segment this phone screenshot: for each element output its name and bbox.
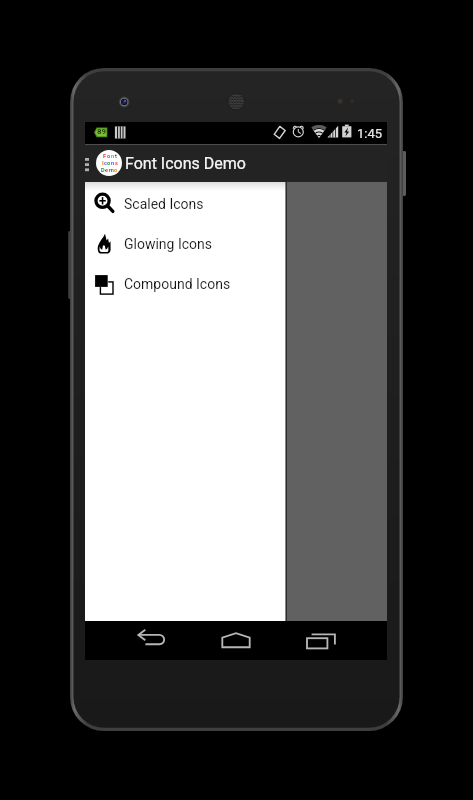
staticText: n bbox=[111, 160, 115, 167]
staticText: m bbox=[109, 167, 114, 174]
staticText: Compound Icons bbox=[124, 276, 231, 292]
button[interactable]: Glowing Icons bbox=[85, 224, 286, 264]
staticText: e bbox=[105, 167, 109, 174]
staticText: n bbox=[111, 153, 115, 160]
staticText: o bbox=[107, 153, 111, 160]
staticText: t bbox=[115, 153, 117, 160]
button[interactable]: Scaled Icons bbox=[85, 184, 286, 224]
button[interactable]: F bbox=[96, 150, 122, 176]
button[interactable]: Compound Icons bbox=[85, 264, 286, 304]
staticText: Scaled Icons bbox=[124, 196, 204, 212]
staticText: s bbox=[115, 160, 118, 167]
staticText: o bbox=[107, 160, 111, 167]
staticText: 89 bbox=[97, 127, 107, 136]
button[interactable]: Open navigation menu bbox=[85, 144, 91, 182]
staticText: D bbox=[101, 167, 105, 174]
staticText: F bbox=[103, 153, 107, 160]
staticText: Glowing Icons bbox=[124, 236, 212, 252]
staticText: c bbox=[104, 160, 107, 167]
staticText: I bbox=[102, 160, 104, 167]
button[interactable]: Back bbox=[123, 621, 181, 660]
button[interactable]: Home bbox=[207, 621, 265, 660]
staticText: 1:45 bbox=[357, 126, 383, 141]
staticText: Font Icons Demo bbox=[125, 154, 246, 173]
button[interactable]: Recent apps bbox=[292, 621, 350, 660]
staticText: o bbox=[114, 167, 118, 174]
